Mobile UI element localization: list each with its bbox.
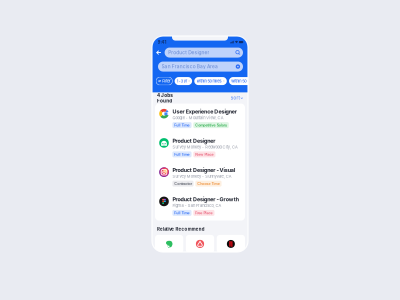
- staticText: Free Place: [195, 211, 213, 215]
- staticText: Full Time: [174, 152, 190, 157]
- staticText: Full Time: [174, 123, 190, 127]
- button[interactable]: Netflix: [217, 235, 245, 253]
- button[interactable]: Product Designer - Growth: [155, 191, 245, 220]
- staticText: within 50 miles: [196, 79, 221, 83]
- staticText: Google - Mountain View, CA: [172, 115, 224, 120]
- staticText: Relative Recommend: [157, 227, 205, 232]
- staticText: Product Designer: [168, 50, 209, 55]
- staticText: Product Designer: [172, 137, 215, 144]
- staticText: ✕: [223, 79, 225, 83]
- button[interactable]: User Experience Designer: [155, 104, 245, 133]
- staticText: within 50: [231, 79, 246, 83]
- button[interactable]: Filter: [156, 77, 172, 85]
- button[interactable]: San Francisco Bay Area: [158, 62, 243, 72]
- staticText: Survey Monkey - Redwood City, CA: [172, 145, 238, 149]
- button[interactable]: within 50: [229, 77, 251, 85]
- staticText: Choose Time: [197, 181, 220, 186]
- staticText: Filter: [162, 79, 170, 83]
- staticText: Product Designer - Visual: [172, 167, 235, 173]
- staticText: ✕: [188, 79, 190, 83]
- button[interactable]: within 50 miles: [194, 77, 227, 85]
- staticText: Survey Monkey - Sunnyvale, CA: [172, 174, 232, 179]
- button[interactable]: Product Designer: [155, 133, 245, 162]
- staticText: 1-3 yr: [177, 79, 187, 83]
- staticText: Contractor: [174, 181, 192, 186]
- staticText: Figma - San Francisco, CA: [172, 203, 222, 208]
- staticText: Sort: [231, 95, 240, 101]
- button[interactable]: Evernote: [155, 235, 183, 253]
- staticText: Competitive Salary: [195, 123, 227, 127]
- button[interactable]: Product Designer - Visual: [155, 162, 245, 191]
- button[interactable]: 1-3 yr: [175, 77, 192, 85]
- staticText: 9:41: [157, 39, 166, 45]
- button[interactable]: Airbnb: [186, 235, 214, 253]
- staticText: Full Time: [174, 211, 190, 215]
- staticText: ✕: [247, 79, 249, 83]
- staticText: 4 Jobs Found: [157, 92, 173, 104]
- button[interactable]: Sort: [231, 95, 243, 101]
- button[interactable]: Product Designer: [165, 48, 243, 58]
- staticText: San Francisco Bay Area: [162, 64, 218, 69]
- staticText: Product Designer - Growth: [172, 196, 239, 202]
- staticText: New Place: [195, 152, 213, 157]
- staticText: User Experience Designer: [172, 108, 237, 115]
- button[interactable]: Back: [156, 50, 162, 55]
